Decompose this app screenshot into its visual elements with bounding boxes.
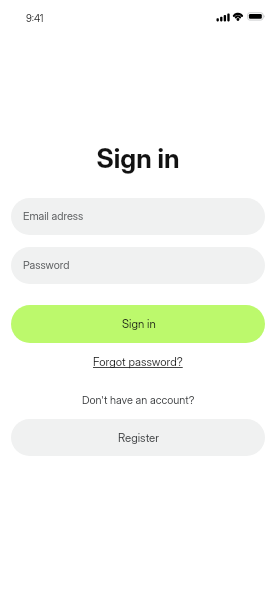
staticText: 9:41	[26, 12, 44, 24]
staticText: Don't have an account?	[82, 393, 195, 406]
staticText: Password	[23, 258, 70, 271]
staticText: Sign in	[0, 142, 276, 174]
button[interactable]: Forgot password?	[90, 353, 186, 371]
staticText: Register	[118, 431, 159, 445]
button[interactable]: Password	[11, 247, 265, 284]
other: Signal, Wi-Fi and battery status	[216, 12, 265, 22]
staticText: Sign in	[122, 317, 156, 331]
button[interactable]: Sign in	[11, 305, 265, 343]
button[interactable]: Email adress	[11, 198, 265, 235]
button[interactable]: Register	[11, 419, 265, 456]
staticText: Email adress	[23, 209, 84, 222]
